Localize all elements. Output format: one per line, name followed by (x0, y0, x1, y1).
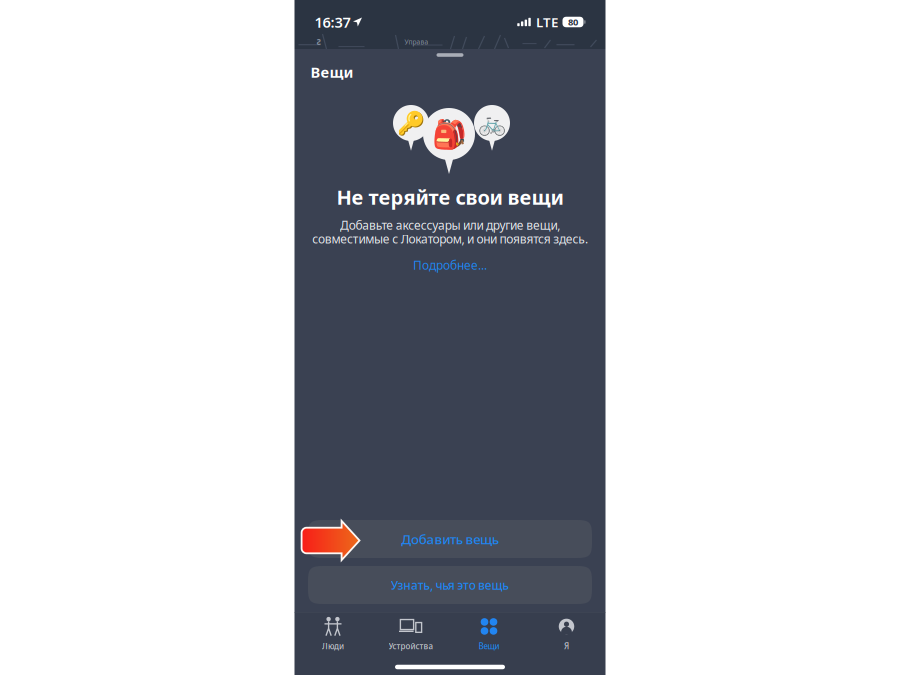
staticText: Я (564, 641, 569, 651)
button[interactable]: Вещи (454, 616, 524, 652)
staticText: Люди (322, 641, 344, 651)
staticText: Не теряйте свои вещи (336, 184, 563, 210)
staticText: 80 (568, 16, 578, 28)
staticText: Вещи (310, 62, 353, 82)
button[interactable]: Люди (298, 616, 368, 652)
staticText: 🚲 (478, 110, 506, 136)
button[interactable]: Подробнее... (400, 257, 500, 273)
staticText: Вещи (478, 641, 499, 651)
staticText: Управа (404, 38, 428, 46)
staticText: Подробнее... (413, 257, 487, 273)
button[interactable]: Узнать, чья это вещь (308, 566, 592, 604)
staticText: 🔑 (397, 110, 425, 136)
staticText: Узнать, чья это вещь (391, 577, 509, 593)
staticText: Ƨ (316, 37, 320, 47)
button[interactable]: Устройства (376, 616, 446, 652)
staticText: Добавить вещь (401, 530, 499, 548)
button[interactable]: Я (531, 616, 601, 652)
staticText: Добавьте аксессуары или другие вещи, (340, 217, 560, 233)
staticText: совместимые с Локатором, и они появятся … (312, 231, 588, 247)
staticText: Устройства (388, 641, 433, 651)
staticText: LTE (536, 13, 558, 31)
button[interactable]: Добавить вещь (308, 520, 592, 558)
staticText: 🎒 (431, 118, 466, 150)
staticText: 16:37 (314, 12, 350, 32)
